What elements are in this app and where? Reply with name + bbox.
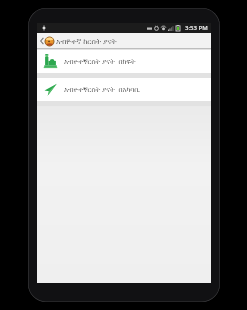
- button[interactable]: አብዮተኛርስት ያናት በክፍት: [37, 50, 211, 73]
- staticText: አብዮተኛርስት ያናት በክፍት: [64, 57, 136, 67]
- staticText: አብዮተኛርስት ያናት በአካባቢ: [64, 85, 140, 95]
- button[interactable]: Up: [37, 33, 211, 49]
- button[interactable]: አብዮተኛርስት ያናት በአካባቢ: [37, 78, 211, 101]
- staticText: አብዮተኛ ከርስት ያናት: [56, 36, 117, 46]
- staticText: 3:53 PM: [185, 24, 208, 32]
